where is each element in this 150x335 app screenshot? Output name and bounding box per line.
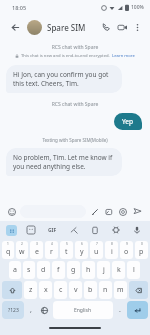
staticText: l (133, 265, 135, 275)
staticText: 7 (96, 242, 98, 246)
staticText: Yep (122, 117, 134, 126)
button[interactable]: Gboard (6, 225, 17, 236)
button[interactable]: Yep (114, 113, 142, 130)
button[interactable]: j (97, 261, 110, 279)
button[interactable]: Backspace (129, 281, 148, 299)
button[interactable]: z (24, 281, 37, 299)
button[interactable]: More options (130, 20, 144, 34)
staticText: ?123 (8, 307, 19, 314)
staticText: 0 (141, 242, 143, 246)
staticText: w (19, 247, 25, 257)
staticText: s (27, 265, 31, 275)
staticText: RCS chat with Spare (0, 44, 150, 51)
button[interactable]: Voice input (130, 223, 144, 237)
staticText: d (41, 265, 46, 275)
staticText: 3 (36, 242, 38, 246)
button[interactable]: Spare SIM (47, 22, 98, 33)
button[interactable]: n (99, 281, 112, 299)
staticText: 6 (81, 242, 83, 246)
button[interactable]: GIF (45, 223, 59, 237)
button[interactable]: Call (98, 19, 114, 35)
staticText: n (103, 285, 108, 295)
staticText: k (117, 265, 121, 275)
staticText: 2 (21, 242, 23, 246)
staticText: x (44, 285, 48, 295)
staticText: , (30, 305, 32, 315)
button[interactable]: h (82, 261, 95, 279)
staticText: i (111, 247, 113, 257)
button[interactable]: m (114, 281, 127, 299)
staticText: p (139, 247, 144, 257)
staticText: No problem, Tim. Let me know if you need… (13, 153, 115, 171)
staticText: t (65, 247, 68, 257)
staticText: q (6, 247, 11, 257)
button[interactable]: Send SMS (130, 204, 145, 219)
button[interactable]: Learn more (112, 53, 135, 59)
staticText: 4 (51, 242, 53, 246)
button[interactable]: , (26, 301, 36, 319)
staticText: r (50, 247, 53, 257)
button[interactable]: s (23, 261, 35, 279)
button[interactable]: Translate (67, 223, 81, 237)
staticText: 1 (7, 242, 9, 246)
staticText: 18:05 (12, 4, 27, 11)
staticText: This chat is new and is end-to-end encry… (21, 53, 110, 59)
staticText: m (117, 285, 124, 295)
button[interactable]: f (52, 261, 65, 279)
button[interactable]: ?123 (2, 301, 24, 319)
button[interactable]: Handwriting (88, 205, 102, 219)
button[interactable]: 0 (135, 241, 148, 259)
button[interactable]: Camera (116, 205, 130, 219)
staticText: o (124, 247, 129, 257)
staticText: 5 (66, 242, 68, 246)
button[interactable]: k (112, 261, 125, 279)
button[interactable]: Clipboard (88, 223, 102, 237)
button[interactable]: b (84, 281, 97, 299)
button[interactable]: No problem, Tim. Let me know if you need… (6, 148, 122, 176)
button[interactable]: 1 (2, 241, 14, 259)
staticText: c (59, 285, 63, 295)
button[interactable]: . (115, 301, 125, 319)
button[interactable]: 2 (16, 241, 28, 259)
button[interactable]: Video call (114, 19, 130, 35)
staticText: u (94, 247, 99, 257)
staticText: 8 (111, 242, 113, 246)
button[interactable]: Settings (109, 223, 123, 237)
staticText: Hi Jon, can you confirm you got this tex… (13, 70, 115, 88)
button[interactable]: 4 (45, 241, 58, 259)
button[interactable] (27, 20, 42, 35)
staticText: e (35, 247, 39, 257)
button[interactable]: 5 (60, 241, 73, 259)
button[interactable]: 3 (30, 241, 43, 259)
button[interactable]: v (69, 281, 82, 299)
button[interactable]: c (54, 281, 67, 299)
button[interactable]: 6 (75, 241, 88, 259)
button[interactable]: Back (6, 18, 24, 36)
button[interactable]: Gallery (102, 205, 116, 219)
button[interactable]: Change language (38, 301, 51, 319)
button[interactable]: 9 (120, 241, 133, 259)
button[interactable]: Emoji (5, 205, 18, 218)
button[interactable]: g (67, 261, 80, 279)
staticText: b (88, 285, 93, 295)
button[interactable]: Stickers (24, 223, 38, 237)
staticText: h (86, 265, 91, 275)
button[interactable]: Enter (127, 301, 148, 319)
staticText: z (29, 285, 33, 295)
button[interactable]: a (9, 261, 21, 279)
staticText: y (80, 247, 84, 257)
button[interactable]: d (37, 261, 50, 279)
button[interactable]: l (127, 261, 140, 279)
button[interactable]: 7 (90, 241, 103, 259)
button[interactable]: x (39, 281, 52, 299)
button[interactable]: Hi Jon, can you confirm you got this tex… (6, 65, 122, 93)
staticText: English (74, 307, 92, 314)
staticText: Texting with Spare SIM(Mobile) (0, 137, 150, 143)
staticText: RCS chat with Spare (0, 101, 150, 108)
staticText: 9 (126, 242, 128, 246)
button[interactable]: Shift (2, 281, 22, 299)
button[interactable]: 8 (105, 241, 118, 259)
staticText: v (74, 285, 78, 295)
button[interactable]: English (53, 301, 113, 319)
